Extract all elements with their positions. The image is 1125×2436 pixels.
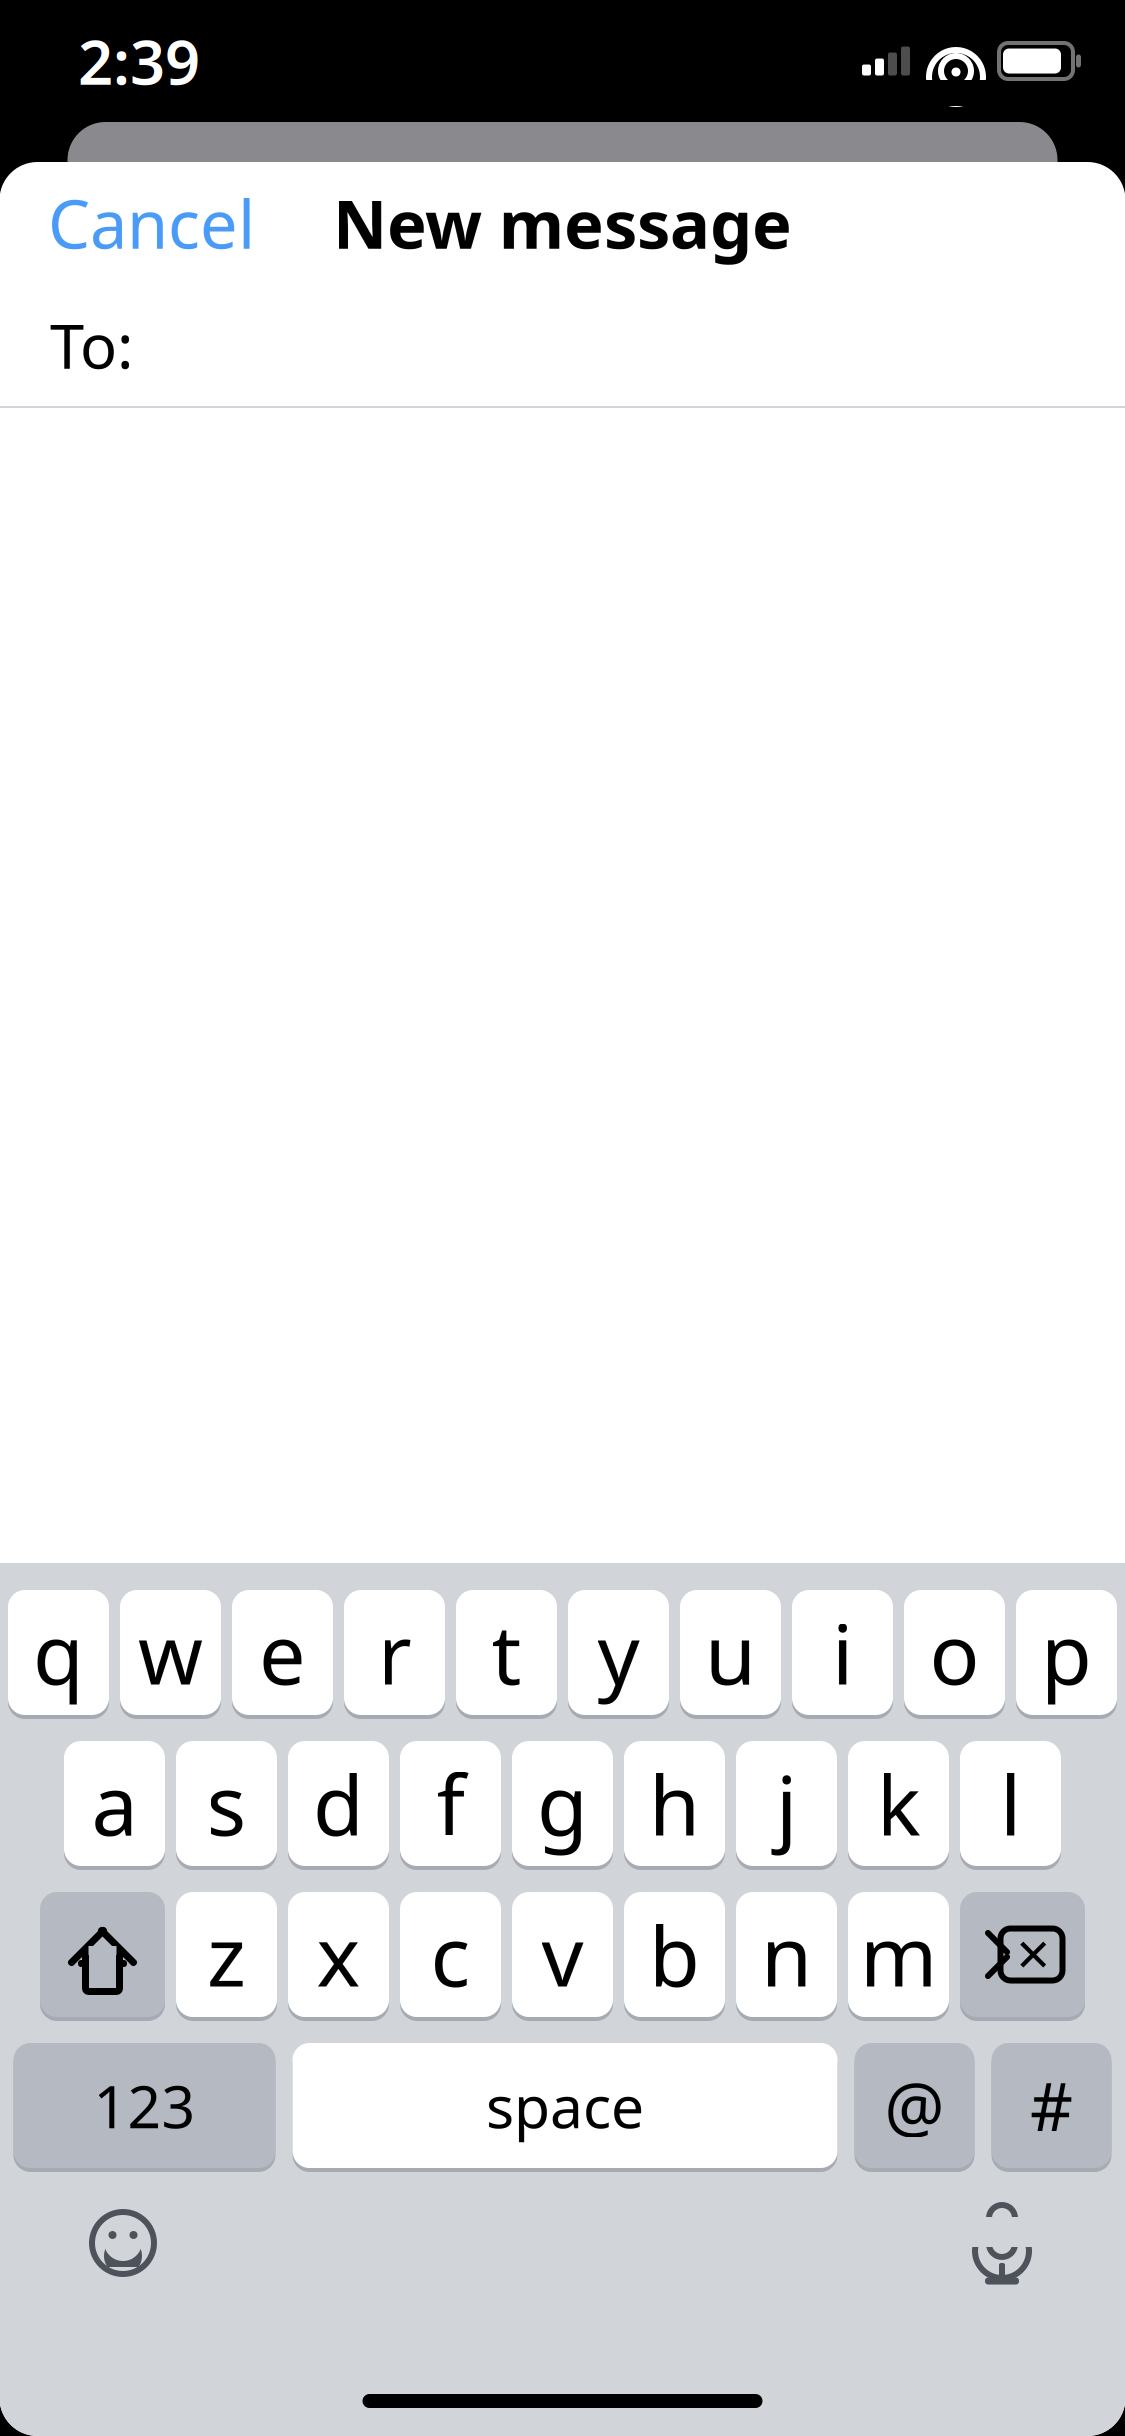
- staticText: 123: [93, 2066, 195, 2144]
- staticText: l: [1000, 1749, 1021, 1858]
- staticText: c: [430, 1900, 470, 2009]
- button[interactable]: q: [8, 1588, 109, 1717]
- button[interactable]: v: [512, 1890, 613, 2019]
- button[interactable]: @: [854, 2041, 974, 2170]
- staticText: d: [313, 1749, 364, 1858]
- staticText: u: [705, 1598, 756, 1707]
- staticText: o: [929, 1598, 979, 1707]
- staticText: e: [259, 1598, 306, 1707]
- staticText: q: [33, 1598, 84, 1707]
- staticText: #: [1030, 2061, 1073, 2150]
- staticText: x: [316, 1900, 360, 2009]
- button[interactable]: n: [736, 1890, 837, 2019]
- button[interactable]: h: [624, 1739, 725, 1868]
- staticText: t: [491, 1598, 521, 1707]
- staticText: ×: [1016, 1913, 1050, 1991]
- button[interactable]: x: [288, 1890, 389, 2019]
- button[interactable]: s: [176, 1739, 277, 1868]
- staticText: j: [776, 1749, 797, 1858]
- staticText: m: [860, 1900, 937, 2009]
- button[interactable]: u: [680, 1588, 781, 1717]
- staticText: p: [1041, 1598, 1092, 1707]
- staticText: w: [138, 1598, 203, 1707]
- staticText: Cancel: [48, 179, 255, 267]
- button[interactable]: Cancel: [36, 165, 267, 281]
- staticText: @: [884, 2061, 944, 2150]
- button[interactable]: j: [736, 1739, 837, 1868]
- staticText: To:: [50, 304, 133, 386]
- button[interactable]: #: [991, 2041, 1111, 2170]
- button[interactable]: e: [232, 1588, 333, 1717]
- staticText: i: [832, 1598, 853, 1707]
- staticText: k: [876, 1749, 920, 1858]
- staticText: n: [761, 1900, 812, 2009]
- staticText: y: [597, 1598, 639, 1707]
- button[interactable]: m: [848, 1890, 949, 2019]
- staticText: New message: [333, 179, 792, 267]
- button[interactable]: To:: [0, 284, 1125, 406]
- button[interactable]: Emoji: [48, 2188, 198, 2298]
- staticText: a: [91, 1749, 137, 1858]
- button[interactable]: c: [400, 1890, 501, 2019]
- staticText: z: [207, 1900, 246, 2009]
- staticText: 2:39: [78, 20, 200, 102]
- button[interactable]: Shift: [40, 1890, 165, 2019]
- button[interactable]: t: [456, 1588, 557, 1717]
- staticText: g: [537, 1749, 588, 1858]
- button[interactable]: Delete: [960, 1890, 1085, 2019]
- button[interactable]: p: [1016, 1588, 1117, 1717]
- staticText: v: [541, 1900, 583, 2009]
- staticText: b: [649, 1900, 700, 2009]
- staticText: space: [486, 2066, 644, 2144]
- button[interactable]: g: [512, 1739, 613, 1868]
- staticText: f: [436, 1749, 464, 1858]
- button[interactable]: Dictation: [927, 2188, 1077, 2298]
- button[interactable]: z: [176, 1890, 277, 2019]
- button[interactable]: i: [792, 1588, 893, 1717]
- staticText: r: [377, 1598, 411, 1707]
- button[interactable]: w: [120, 1588, 221, 1717]
- button[interactable]: f: [400, 1739, 501, 1868]
- staticText: h: [649, 1749, 700, 1858]
- button[interactable]: space: [292, 2041, 837, 2170]
- button[interactable]: y: [568, 1588, 669, 1717]
- button[interactable]: k: [848, 1739, 949, 1868]
- staticText: s: [206, 1749, 246, 1858]
- button[interactable]: o: [904, 1588, 1005, 1717]
- button[interactable]: l: [960, 1739, 1061, 1868]
- button[interactable]: b: [624, 1890, 725, 2019]
- button[interactable]: d: [288, 1739, 389, 1868]
- button[interactable]: 123: [13, 2041, 275, 2170]
- button[interactable]: r: [344, 1588, 445, 1717]
- button[interactable]: a: [64, 1739, 165, 1868]
